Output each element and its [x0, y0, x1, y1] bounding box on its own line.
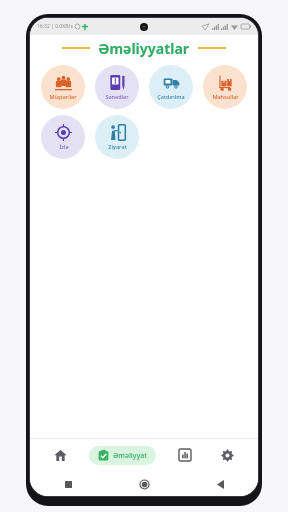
button[interactable]: İzlə — [41, 115, 85, 159]
button[interactable]: Məhsullar — [203, 65, 247, 109]
staticText: Müştərilər — [49, 93, 77, 100]
button[interactable]: Back — [182, 472, 258, 496]
staticText: Əməliyyat — [113, 451, 147, 461]
button[interactable]: Recents — [30, 472, 106, 496]
button[interactable]: Reports — [164, 438, 206, 472]
staticText: Sənədlər — [105, 93, 129, 100]
staticText: Əməliyyatlar — [98, 39, 190, 58]
button[interactable]: Çatdırılma — [149, 65, 193, 109]
staticText: Məhsullar — [212, 93, 239, 100]
button[interactable]: Ziyarət — [95, 115, 139, 159]
button[interactable]: Müştərilər — [41, 65, 85, 109]
staticText: İzlə — [59, 143, 69, 150]
button[interactable]: Settings — [206, 438, 248, 472]
button[interactable]: Home — [106, 472, 182, 496]
staticText: Çatdırılma — [157, 93, 185, 100]
button[interactable]: Home — [40, 438, 81, 472]
button[interactable]: Əməliyyat — [89, 446, 156, 465]
staticText: Ziyarət — [108, 143, 127, 150]
staticText: 16:32 | 0.0KB/s — [37, 23, 73, 30]
button[interactable]: Sənədlər — [95, 65, 139, 109]
